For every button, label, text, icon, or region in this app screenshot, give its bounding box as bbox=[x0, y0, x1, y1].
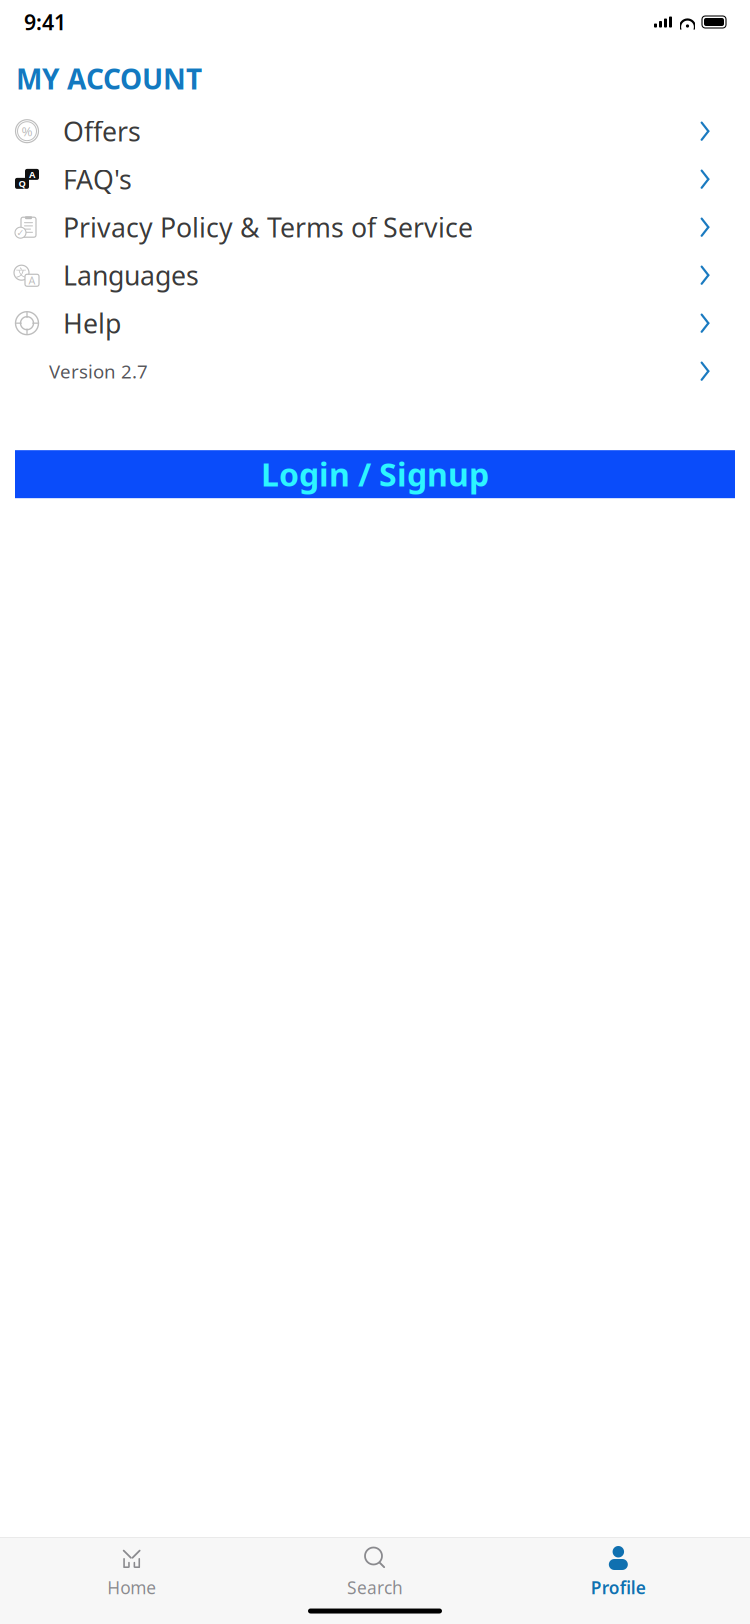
staticText: Version 2.7 bbox=[49, 359, 148, 384]
button[interactable]: A bbox=[0, 155, 750, 203]
staticText: 文 bbox=[16, 266, 27, 279]
staticText: MY ACCOUNT bbox=[16, 60, 202, 97]
staticText: FAQ's bbox=[63, 161, 132, 197]
staticText: Help bbox=[63, 305, 121, 341]
staticText: Search bbox=[347, 1576, 403, 1599]
button[interactable]: ✓ bbox=[0, 203, 750, 251]
button[interactable]: 文 bbox=[0, 251, 750, 299]
button[interactable]: Help bbox=[0, 299, 750, 347]
staticText: Profile bbox=[591, 1576, 646, 1599]
staticText: 9:41 bbox=[24, 8, 66, 36]
button[interactable]: Home bbox=[10, 1546, 253, 1598]
button[interactable]: Version 2.7 bbox=[0, 347, 750, 395]
staticText: Home bbox=[107, 1576, 156, 1599]
staticText: Privacy Policy & Terms of Service bbox=[63, 209, 473, 245]
button[interactable]: Search bbox=[253, 1546, 497, 1598]
staticText: ✓ bbox=[16, 227, 24, 238]
button[interactable]: % bbox=[0, 107, 750, 155]
staticText: Languages bbox=[63, 257, 199, 293]
staticText: A bbox=[29, 168, 35, 181]
staticText: A bbox=[28, 273, 35, 287]
staticText: Q bbox=[18, 177, 25, 190]
button[interactable]: Login / Signup bbox=[15, 450, 735, 498]
staticText: Login / Signup bbox=[261, 453, 489, 495]
button[interactable]: Profile bbox=[497, 1546, 740, 1598]
staticText: Offers bbox=[63, 113, 141, 149]
staticText: % bbox=[21, 122, 32, 140]
